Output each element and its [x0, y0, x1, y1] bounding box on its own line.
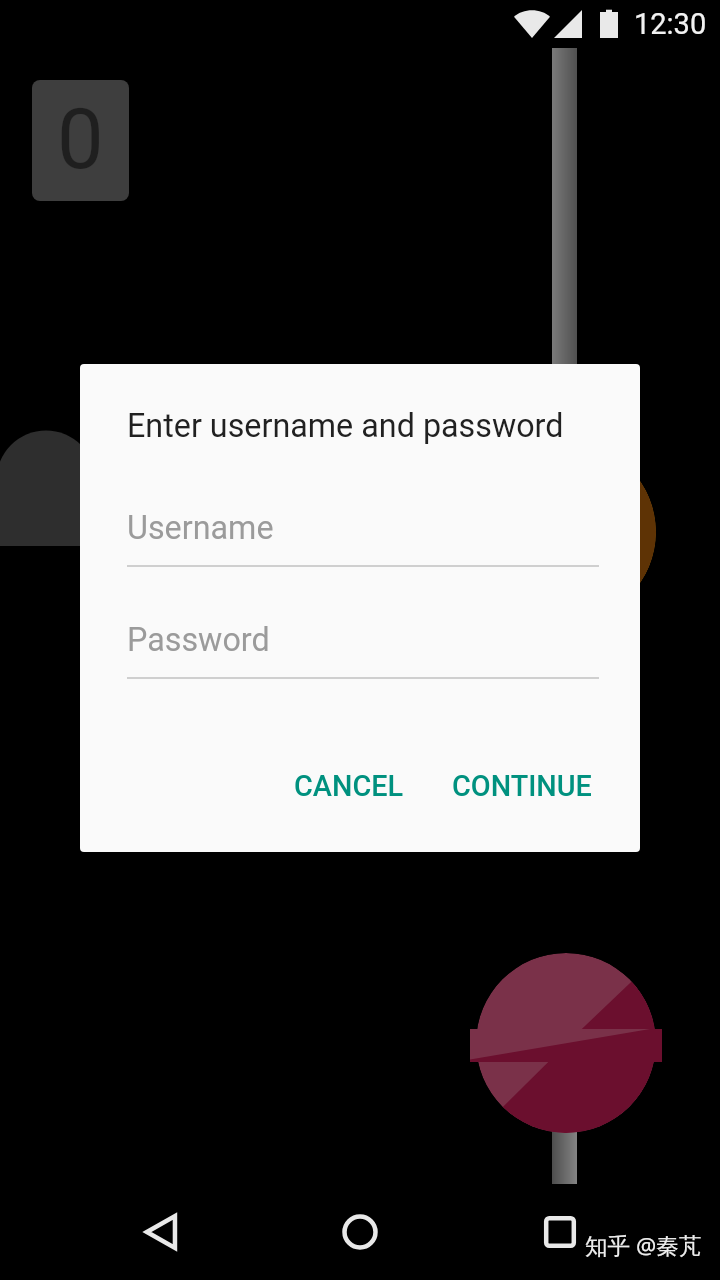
button[interactable]: Back: [130, 1200, 194, 1264]
staticText: Password: [127, 621, 270, 659]
button[interactable]: CONTINUE: [446, 759, 598, 813]
button[interactable]: Score: [32, 80, 129, 201]
staticText: 0: [57, 91, 104, 188]
button[interactable]: CANCEL: [288, 759, 410, 813]
button[interactable]: Recent apps: [528, 1200, 592, 1264]
staticText: Username: [127, 509, 274, 547]
staticText: 12:30: [634, 7, 707, 41]
staticText: Enter username and password: [127, 407, 564, 445]
staticText: CANCEL: [294, 769, 404, 803]
staticText: 知乎 @秦芃: [585, 1230, 702, 1261]
button[interactable]: Home: [328, 1200, 392, 1264]
staticText: CONTINUE: [452, 769, 592, 803]
